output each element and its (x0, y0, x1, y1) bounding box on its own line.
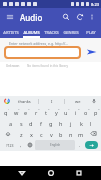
staticText: 8 (78, 107, 80, 110)
button[interactable]: Send (84, 46, 98, 58)
button[interactable]: n (66, 128, 76, 139)
button[interactable]: m (76, 128, 86, 139)
button[interactable]: , (17, 140, 25, 150)
staticText: . (79, 142, 81, 148)
staticText: thanks (18, 99, 31, 104)
staticText: 4 (38, 107, 40, 110)
button[interactable]: Home (44, 166, 58, 180)
staticText: Unknown (6, 64, 20, 68)
button[interactable]: Google (3, 97, 11, 105)
button[interactable]: f (36, 117, 46, 128)
button[interactable]: More options (87, 12, 97, 22)
button[interactable]: Enter (85, 141, 98, 149)
staticText: 5 (48, 107, 50, 110)
button[interactable]: j (66, 117, 76, 128)
button[interactable]: Backspace (86, 128, 101, 139)
staticText: ?123 (6, 143, 14, 148)
button[interactable]: z (16, 128, 26, 139)
staticText: No items found in this library (27, 64, 68, 68)
staticText: o (84, 109, 88, 116)
button[interactable]: thanks (11, 96, 38, 106)
button[interactable] (5, 47, 80, 58)
button[interactable]: ALBUMS (21, 26, 41, 38)
staticText: k (80, 120, 83, 127)
button[interactable]: 9 (81, 106, 91, 117)
button[interactable]: Search (60, 11, 72, 23)
staticText: Enter network address, e.g. http://... (9, 41, 69, 46)
staticText: 1 (8, 107, 10, 110)
staticText: c (40, 131, 43, 138)
button[interactable]: Space (35, 140, 75, 150)
staticText: ARTISTS (3, 30, 19, 35)
staticText: we (75, 99, 81, 104)
button[interactable]: 1 (0, 106, 11, 117)
button[interactable]: TRACKS (41, 26, 61, 38)
button[interactable]: 7 (61, 106, 71, 117)
button[interactable]: we (65, 96, 90, 106)
staticText: t (45, 109, 47, 116)
button[interactable]: 8 (71, 106, 81, 117)
button[interactable]: ?123 (2, 140, 17, 150)
staticText: r (35, 109, 38, 116)
button[interactable]: a (6, 117, 16, 128)
button[interactable]: x (26, 128, 36, 139)
staticText: 6 (58, 107, 60, 110)
button[interactable]: Change language (25, 140, 34, 150)
staticText: 3 (28, 107, 30, 110)
button[interactable]: Open navigation drawer (4, 11, 16, 23)
button[interactable]: . (76, 140, 84, 150)
staticText: 7 (68, 107, 70, 110)
button[interactable]: 3 (21, 106, 31, 117)
staticText: y (55, 109, 58, 116)
staticText: q (4, 109, 8, 116)
staticText: 2 (18, 107, 20, 110)
button[interactable]: 2 (11, 106, 21, 117)
button[interactable]: b (56, 128, 66, 139)
button[interactable]: 5 (41, 106, 51, 117)
staticText: n (69, 131, 73, 138)
button[interactable]: s (16, 117, 26, 128)
staticText: 9 (88, 107, 90, 110)
staticText: s (20, 120, 23, 127)
staticText: x (30, 131, 33, 138)
button[interactable]: 6 (51, 106, 61, 117)
button[interactable]: Recent apps (72, 166, 86, 180)
staticText: l (90, 120, 92, 127)
button[interactable]: Shift (0, 128, 16, 139)
staticText: TRACKS (44, 30, 59, 35)
staticText: z (20, 131, 23, 138)
button[interactable]: l (86, 117, 96, 128)
staticText: m (78, 131, 84, 138)
button[interactable]: h (56, 117, 66, 128)
staticText: f (40, 120, 42, 127)
button[interactable]: k (76, 117, 86, 128)
staticText: p (94, 109, 98, 116)
staticText: j (70, 120, 72, 127)
staticText: g (49, 120, 53, 127)
staticText: GENRES (63, 30, 79, 35)
button[interactable]: d (26, 117, 36, 128)
button[interactable]: I (39, 96, 64, 106)
button[interactable]: GENRES (61, 26, 81, 38)
button[interactable]: 4 (31, 106, 41, 117)
button[interactable]: PLAY (81, 26, 101, 38)
button[interactable]: g (46, 117, 56, 128)
staticText: b (59, 131, 63, 138)
button[interactable]: Back (15, 166, 29, 180)
staticText: d (29, 120, 33, 127)
staticText: I (51, 99, 53, 104)
staticText: 8:23 (91, 2, 99, 7)
staticText: v (50, 131, 53, 138)
button[interactable]: History (74, 11, 86, 23)
staticText: e (24, 109, 28, 116)
staticText: PLAY (86, 30, 96, 35)
staticText: English (50, 143, 61, 147)
staticText: Audio (20, 12, 43, 23)
button[interactable]: v (46, 128, 56, 139)
button[interactable]: 0 (91, 106, 101, 117)
button[interactable]: c (36, 128, 46, 139)
staticText: i (75, 109, 77, 116)
button[interactable]: Voice input (90, 97, 98, 105)
button[interactable]: ARTISTS (0, 26, 21, 38)
staticText: 0 (98, 107, 100, 110)
